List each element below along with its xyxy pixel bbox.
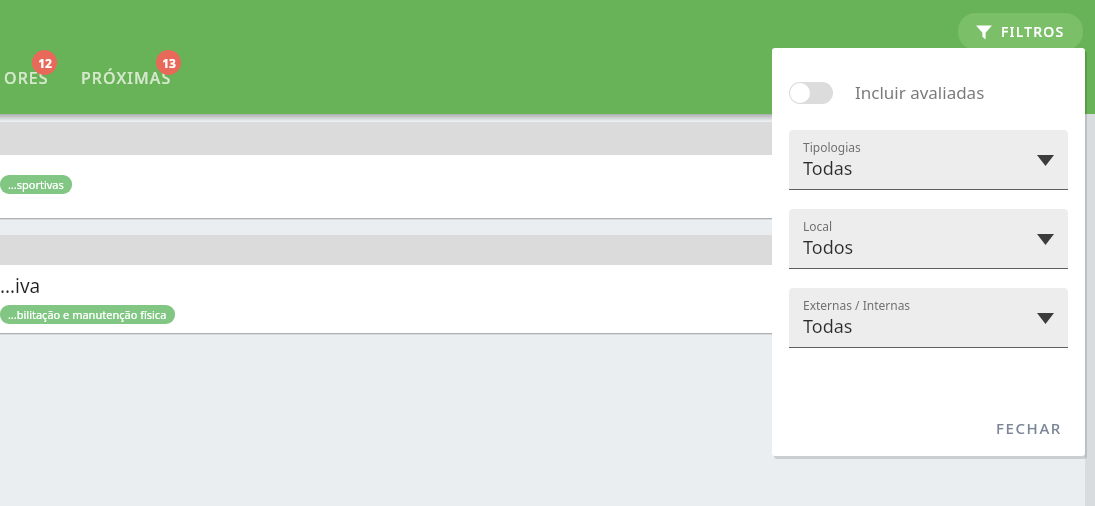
button[interactable]: Tipologias [789, 130, 1068, 190]
staticText: …iva [0, 273, 41, 299]
button[interactable]: …iva [0, 235, 1085, 335]
staticText: Incluir avaliadas [855, 81, 985, 104]
staticText: ORES [4, 67, 49, 89]
staticText: 12 [38, 55, 52, 71]
staticText: FILTROS [1001, 22, 1065, 41]
staticText: Local [803, 218, 833, 234]
button[interactable]: FECHAR [990, 412, 1068, 444]
staticText: Todas [803, 314, 853, 339]
staticText: …sportivas [8, 177, 64, 192]
button[interactable]: PRÓXIMAS [77, 63, 176, 96]
staticText: Tipologias [803, 139, 861, 155]
staticText: 13 [162, 55, 176, 71]
button[interactable]: …sportivas [0, 122, 1085, 220]
staticText: FECHAR [996, 418, 1062, 438]
staticText: Todas [803, 156, 853, 181]
button[interactable]: Local [789, 209, 1068, 269]
button[interactable]: Externas / Internas [789, 288, 1068, 348]
button[interactable]: FILTROS [958, 13, 1083, 50]
staticText: Externas / Internas [803, 297, 911, 313]
staticText: PRÓXIMAS [81, 67, 172, 89]
button[interactable]: Incluir avaliadas [789, 81, 1068, 104]
button[interactable]: ORES [0, 63, 53, 96]
staticText: Todos [803, 235, 854, 260]
staticText: …bilitação e manutenção física [8, 307, 167, 322]
